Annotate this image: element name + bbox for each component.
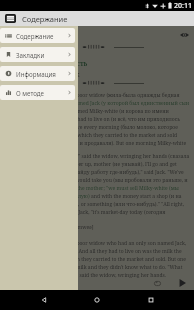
- button[interactable]: Back: [34, 290, 54, 310]
- button[interactable]: Repeat: [151, 277, 163, 289]
- button[interactable]: Play: [175, 276, 189, 290]
- staticText: Содержание: [16, 32, 54, 40]
- button[interactable]: Toggle translation: [178, 29, 190, 41]
- button[interactable]: Содержание: [0, 28, 75, 43]
- staticText: Информация: [16, 70, 56, 78]
- button[interactable]: Recent apps: [141, 290, 161, 310]
- button[interactable]: Информация: [0, 66, 75, 81]
- button[interactable]: Закладки: [0, 47, 75, 62]
- button[interactable]: Open navigation drawer: [4, 12, 17, 25]
- staticText: There was once upon a time a poor widow …: [4, 92, 190, 154]
- staticText: лоk: [68, 70, 80, 79]
- button[interactable]: Close navigation drawer: [78, 26, 194, 290]
- button[interactable]: Home: [87, 290, 107, 310]
- staticText: l do (что должны мы делать)?" said the w…: [4, 153, 190, 223]
- button[interactable]: О методе: [0, 85, 75, 100]
- staticText: О методе: [16, 89, 45, 97]
- staticText: 20:11: [174, 1, 192, 11]
- staticText: ет (есть: [62, 59, 88, 68]
- staticText: Закладки: [16, 51, 45, 59]
- staticText: wringing [rɪŋ], somewhere ['sʌmweə]: [4, 224, 94, 231]
- staticText: There was once upon a time a poor widow …: [4, 240, 190, 278]
- staticText: Содержание: [22, 14, 68, 24]
